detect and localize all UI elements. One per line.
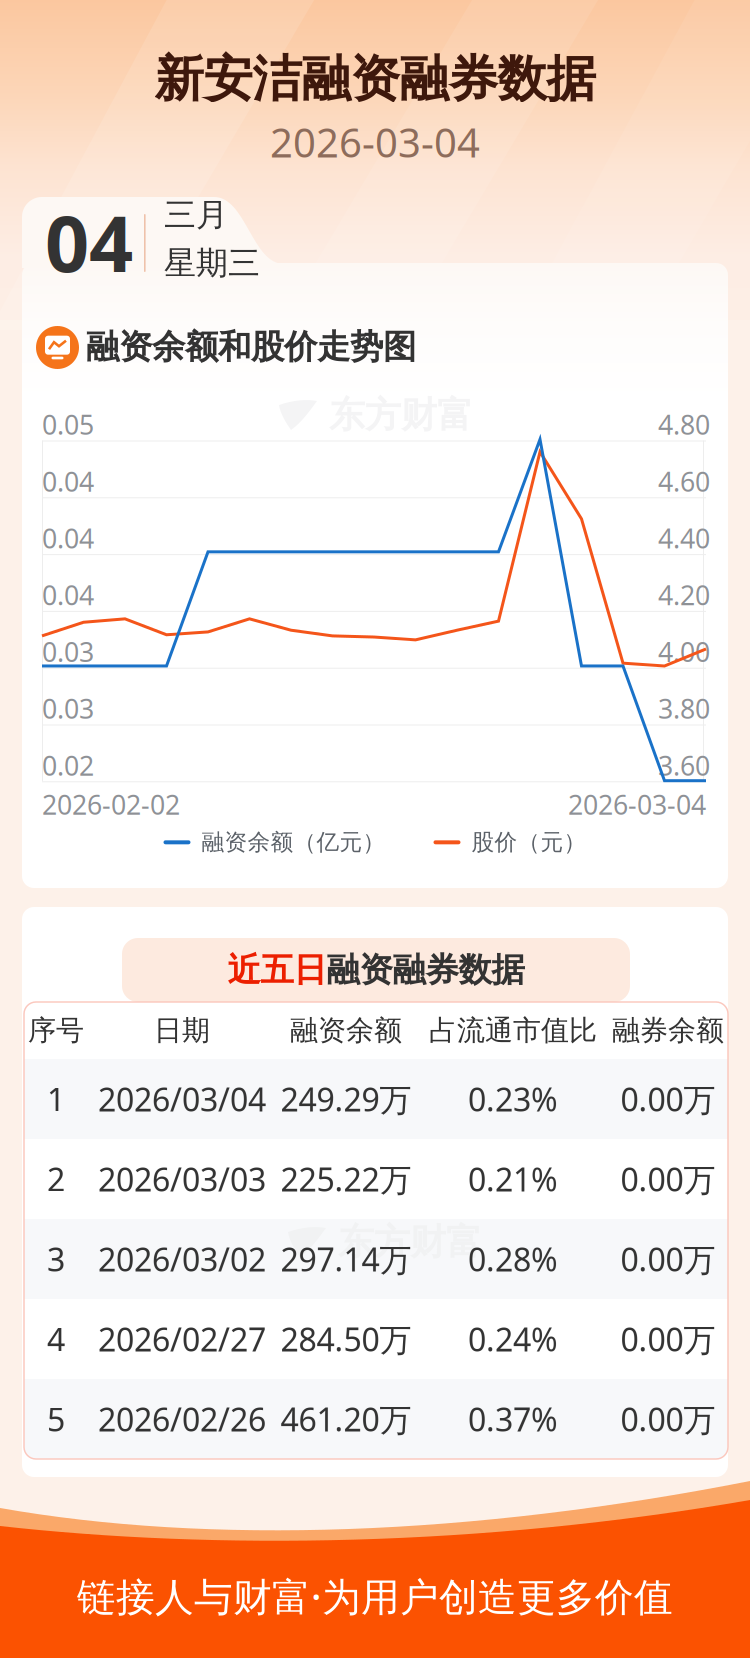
staticText: 融券余额 (612, 1013, 724, 1048)
staticText: 2 (47, 1158, 65, 1200)
staticText: 0.04 (42, 577, 94, 613)
staticText: 2026-02-02 (42, 787, 180, 822)
staticText: 0.24% (468, 1318, 558, 1360)
staticText: 0.00万 (620, 1158, 715, 1200)
staticText: 3.60 (658, 748, 710, 783)
staticText: 3 (47, 1238, 65, 1280)
staticText: 占流通市值比 (429, 1013, 597, 1048)
staticText: 4.40 (658, 520, 710, 556)
staticText: 284.50万 (280, 1318, 411, 1360)
staticText: 融资融券数据 (326, 949, 524, 990)
staticText: 0.28% (468, 1238, 558, 1280)
staticText: 2026/03/03 (98, 1158, 266, 1200)
staticText: 链接人与财富·为用户创造更多价值 (77, 1570, 673, 1622)
staticText: 0.04 (42, 520, 94, 556)
staticText: 序号 (28, 1013, 84, 1048)
staticText: 融资余额和股价走势图 (86, 326, 416, 367)
staticText: 0.00万 (620, 1238, 715, 1280)
staticText: 星期三 (164, 243, 260, 283)
staticText: 融资余额（亿元） (201, 828, 385, 856)
staticText: 日期 (154, 1013, 210, 1048)
staticText: 2026-03-04 (270, 115, 480, 168)
staticText: 0.03 (42, 634, 94, 669)
staticText: 461.20万 (280, 1398, 411, 1440)
staticText: 2026/03/02 (98, 1238, 266, 1280)
staticText: 0.00万 (620, 1318, 715, 1360)
staticText: 4.00 (658, 634, 710, 669)
staticText: 0.05 (42, 407, 94, 442)
staticText: 东方财富 (338, 1220, 482, 1264)
staticText: 三月 (164, 195, 228, 234)
staticText: 2026/02/26 (98, 1398, 266, 1440)
staticText: 5 (47, 1398, 65, 1440)
staticText: 股价（元） (471, 828, 586, 856)
staticText: 0.03 (42, 691, 94, 726)
staticText: 225.22万 (280, 1158, 411, 1200)
staticText: 4.20 (658, 577, 710, 613)
staticText: 0.00万 (620, 1078, 715, 1120)
staticText: 1 (47, 1078, 65, 1120)
staticText: 04 (45, 191, 133, 293)
staticText: 东方财富 (329, 393, 473, 437)
staticText: 近五日 (227, 949, 326, 990)
staticText: 297.14万 (280, 1238, 411, 1280)
staticText: 2026/02/27 (98, 1318, 266, 1360)
staticText: 2026-03-04 (568, 787, 706, 822)
staticText: 4.60 (658, 464, 710, 499)
staticText: 融资余额 (290, 1013, 402, 1048)
staticText: 2026/03/04 (98, 1078, 266, 1120)
staticText: 3.80 (658, 691, 710, 726)
staticText: 0.00万 (620, 1398, 715, 1440)
staticText: 4.80 (658, 407, 710, 442)
staticText: 新安洁融资融券数据 (154, 49, 595, 109)
staticText: 4 (47, 1318, 65, 1360)
staticText: 0.21% (468, 1158, 558, 1200)
staticText: 0.02 (42, 748, 94, 783)
staticText: 0.37% (468, 1398, 558, 1440)
staticText: 0.04 (42, 464, 94, 499)
staticText: 249.29万 (280, 1078, 411, 1120)
staticText: 0.23% (468, 1078, 558, 1120)
